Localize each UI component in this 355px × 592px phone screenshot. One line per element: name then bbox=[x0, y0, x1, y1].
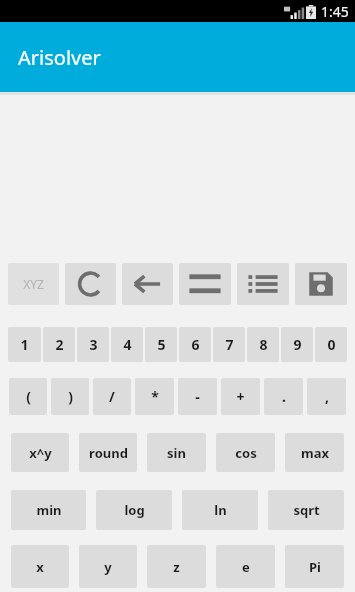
staticText: 7 bbox=[225, 335, 234, 354]
button[interactable]: * bbox=[135, 378, 174, 415]
button[interactable]: log bbox=[96, 490, 172, 530]
button[interactable]: 3 bbox=[77, 327, 109, 362]
button[interactable]: e bbox=[216, 545, 275, 588]
staticText: min bbox=[36, 501, 62, 519]
button[interactable]: sqrt bbox=[268, 490, 344, 530]
button[interactable]: , bbox=[307, 378, 346, 415]
staticText: round bbox=[89, 444, 128, 462]
button[interactable]: y bbox=[79, 545, 137, 588]
staticText: x bbox=[36, 558, 44, 576]
button[interactable]: x bbox=[11, 545, 69, 588]
staticText: 3 bbox=[89, 335, 98, 354]
staticText: . bbox=[282, 387, 286, 406]
staticText: cos bbox=[235, 444, 257, 462]
button[interactable]: z bbox=[147, 545, 206, 588]
staticText: / bbox=[109, 387, 115, 406]
staticText: z bbox=[173, 558, 180, 576]
button[interactable]: ln bbox=[182, 490, 258, 530]
button[interactable]: 5 bbox=[145, 327, 177, 362]
button[interactable]: round bbox=[79, 433, 137, 472]
staticText: 1 bbox=[20, 335, 29, 354]
button[interactable]: max bbox=[285, 433, 344, 472]
button[interactable]: / bbox=[93, 378, 131, 415]
staticText: 1:45 bbox=[321, 2, 349, 21]
button[interactable]: 2 bbox=[43, 327, 75, 362]
button[interactable]: + bbox=[221, 378, 260, 415]
staticText: ln bbox=[214, 501, 227, 519]
button[interactable]: Save bbox=[295, 263, 347, 305]
staticText: + bbox=[236, 387, 245, 406]
staticText: , bbox=[325, 387, 329, 406]
button[interactable]: ) bbox=[51, 378, 89, 415]
button[interactable]: 6 bbox=[179, 327, 211, 362]
button[interactable]: - bbox=[178, 378, 217, 415]
button[interactable]: sin bbox=[147, 433, 206, 472]
staticText: log bbox=[124, 501, 145, 519]
button[interactable]: Backspace bbox=[122, 263, 173, 305]
button[interactable]: x^y bbox=[11, 433, 69, 472]
button[interactable]: XYZ bbox=[8, 263, 59, 305]
button[interactable]: History bbox=[237, 263, 289, 305]
button[interactable]: 7 bbox=[213, 327, 245, 362]
staticText: 8 bbox=[259, 335, 268, 354]
button[interactable]: Clear bbox=[65, 263, 116, 305]
staticText: 9 bbox=[293, 335, 302, 354]
staticText: 6 bbox=[191, 335, 200, 354]
button[interactable]: 0 bbox=[315, 327, 347, 362]
staticText: - bbox=[195, 387, 200, 406]
staticText: * bbox=[151, 387, 159, 406]
staticText: sin bbox=[167, 444, 186, 462]
staticText: sqrt bbox=[293, 501, 320, 519]
button[interactable]: . bbox=[264, 378, 303, 415]
staticText: 5 bbox=[157, 335, 166, 354]
button[interactable]: 9 bbox=[281, 327, 313, 362]
staticText: e bbox=[242, 558, 250, 576]
staticText: Pi bbox=[309, 558, 321, 576]
button[interactable]: min bbox=[11, 490, 86, 530]
staticText: Arisolver bbox=[18, 44, 101, 71]
staticText: 2 bbox=[55, 335, 64, 354]
staticText: max bbox=[301, 444, 329, 462]
staticText: x^y bbox=[29, 444, 52, 462]
button[interactable]: 8 bbox=[247, 327, 279, 362]
button[interactable]: 4 bbox=[111, 327, 143, 362]
button[interactable]: Equals bbox=[179, 263, 231, 305]
button[interactable]: cos bbox=[216, 433, 275, 472]
staticText: ( bbox=[26, 387, 31, 406]
staticText: y bbox=[104, 558, 112, 576]
button[interactable]: Pi bbox=[285, 545, 344, 588]
staticText: XYZ bbox=[23, 276, 44, 292]
staticText: 4 bbox=[123, 335, 132, 354]
staticText: 0 bbox=[327, 335, 336, 354]
button[interactable]: 1 bbox=[8, 327, 41, 362]
staticText: ) bbox=[68, 387, 73, 406]
button[interactable]: ( bbox=[9, 378, 47, 415]
